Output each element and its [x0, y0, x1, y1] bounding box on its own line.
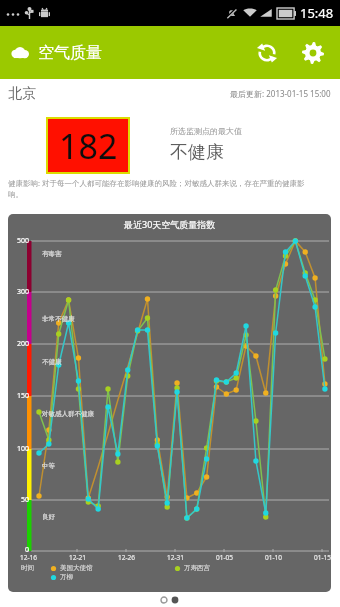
- staticText: 最近30天空气质量指数: [124, 218, 216, 230]
- staticText: 182: [59, 123, 118, 169]
- staticText: 12-26: [118, 553, 135, 562]
- staticText: 01-10: [265, 553, 282, 562]
- staticText: 北京: [8, 85, 36, 103]
- staticText: 中等: [42, 462, 55, 470]
- staticText: 300: [17, 287, 30, 297]
- staticText: 500: [17, 236, 30, 246]
- staticText: 150: [17, 391, 30, 401]
- staticText: 200: [17, 339, 30, 349]
- staticText: 01-15: [314, 553, 331, 562]
- staticText: 12-31: [167, 553, 184, 562]
- staticText: 最后更新: 2013-01-15 15:00: [230, 88, 331, 99]
- staticText: 对敏感人群不健康: [42, 410, 94, 418]
- staticText: 万寿西宫: [184, 564, 210, 572]
- staticText: 15:48: [300, 4, 334, 22]
- staticText: 健康影响: 对于每一个人都可能存在影响健康的风险；对敏感人群来说，存在严重的健康…: [8, 178, 314, 199]
- staticText: 50: [21, 495, 30, 505]
- staticText: 100: [17, 444, 30, 454]
- staticText: 万柳: [60, 573, 73, 581]
- staticText: 不健康: [42, 358, 62, 366]
- staticText: 有毒害: [42, 250, 62, 258]
- staticText: 所选监测点的最大值: [170, 126, 242, 136]
- staticText: 时间: [21, 564, 34, 572]
- staticText: 良好: [42, 513, 55, 521]
- button[interactable]: Refresh: [246, 32, 288, 74]
- staticText: 12-16: [20, 553, 37, 562]
- staticText: 不健康: [170, 141, 224, 164]
- staticText: 12-21: [69, 553, 86, 562]
- staticText: 非常不健康: [42, 315, 75, 323]
- staticText: 0: [25, 545, 30, 555]
- staticText: 01-05: [216, 553, 233, 562]
- staticText: 空气质量: [38, 43, 102, 63]
- button[interactable]: Settings: [292, 32, 334, 74]
- staticText: 美国大使馆: [60, 564, 93, 572]
